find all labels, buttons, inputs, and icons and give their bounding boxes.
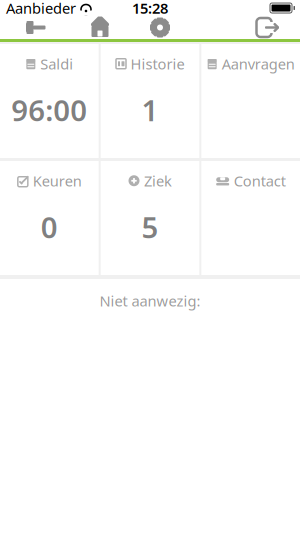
- staticText: Historie: [130, 54, 184, 73]
- staticText: Keuren: [33, 171, 82, 190]
- button[interactable]: Keuren: [0, 161, 99, 275]
- staticText: 1: [141, 90, 158, 129]
- button[interactable]: Historie: [101, 44, 199, 158]
- button[interactable]: Ziek: [101, 161, 199, 275]
- staticText: 5: [141, 207, 158, 246]
- staticText: Aanbieder: [6, 0, 76, 18]
- staticText: Ziek: [144, 171, 172, 190]
- button[interactable]: Home: [88, 16, 112, 38]
- button[interactable]: Back: [23, 17, 47, 37]
- staticText: Contact: [234, 171, 286, 190]
- button[interactable]: Settings: [149, 16, 171, 38]
- staticText: 0: [41, 207, 58, 246]
- button[interactable]: Saldi: [0, 44, 99, 158]
- button[interactable]: Log out: [255, 16, 281, 38]
- button[interactable]: Contact: [201, 161, 300, 275]
- button[interactable]: Aanvragen: [201, 44, 300, 158]
- staticText: 15:28: [132, 0, 168, 18]
- staticText: Aanvragen: [222, 54, 295, 73]
- staticText: 96:00: [11, 90, 87, 129]
- staticText: Niet aanwezig:: [99, 291, 200, 310]
- staticText: Saldi: [40, 54, 73, 73]
